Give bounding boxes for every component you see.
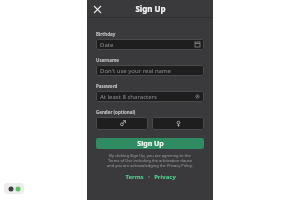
staticText: Don't use your real name [100, 67, 200, 75]
staticText: Terms [125, 173, 144, 181]
staticText: Gender (optional) [96, 109, 136, 115]
staticText: Sign Up [137, 139, 164, 149]
staticText: Username [96, 57, 120, 63]
button[interactable]: Female [152, 117, 204, 130]
button[interactable]: Terms [123, 172, 146, 182]
button[interactable]: Don't use your real name [96, 65, 204, 76]
button[interactable]: Date [96, 39, 204, 50]
staticText: By clicking Sign Up, you are agreeing to… [96, 153, 204, 168]
staticText: Sign Up [135, 3, 166, 14]
button[interactable]: Male [96, 117, 148, 130]
other: Android badge [4, 183, 24, 194]
button[interactable]: At least 8 characters [96, 91, 204, 102]
staticText: Date [100, 41, 195, 49]
button[interactable]: Sign Up [96, 138, 204, 149]
staticText: Birthday [96, 31, 116, 37]
staticText: Password [96, 83, 118, 89]
staticText: Privacy [154, 173, 176, 181]
staticText: At least 8 characters [100, 93, 195, 101]
button[interactable]: Privacy [152, 172, 178, 182]
button[interactable]: Close [91, 3, 103, 15]
